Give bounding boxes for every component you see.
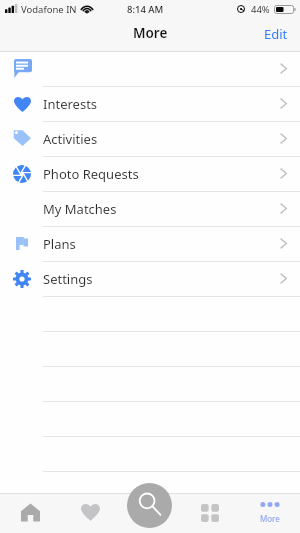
staticText: Plans [43,235,76,253]
staticText: Vodafone IN [21,3,77,16]
staticText: More [260,513,280,524]
button[interactable]: Interests [0,87,300,122]
button[interactable] [0,52,300,87]
staticText: Edit [264,25,288,43]
button[interactable]: My Matches [0,192,300,227]
staticText: Interests [43,95,98,113]
button[interactable]: Favorites [68,494,112,530]
staticText: Activities [43,130,98,148]
staticText: Settings [43,270,93,288]
button[interactable]: Plans [0,227,300,262]
staticText: 44% [251,3,270,16]
staticText: More [133,24,168,42]
button[interactable]: Edit [254,19,300,49]
button[interactable]: Discover [188,495,232,531]
staticText: 8:14 AM [127,3,164,16]
button[interactable]: Photo Requests [0,157,300,192]
staticText: My Matches [43,200,117,218]
button[interactable]: Settings [0,262,300,297]
staticText: Photo Requests [43,165,139,183]
button[interactable]: Search [127,483,172,528]
button[interactable]: Home [8,494,52,530]
button[interactable]: More [247,493,292,533]
button[interactable]: Activities [0,122,300,157]
